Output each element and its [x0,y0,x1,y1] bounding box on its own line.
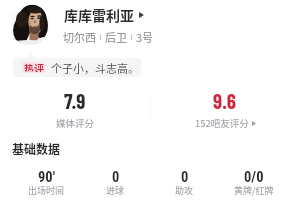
staticText: 进球 [106,184,125,197]
button[interactable]: 90' [12,169,81,199]
button[interactable]: 0/0 [219,169,288,199]
staticText: 90' [38,169,56,186]
staticText: 9.6 [213,88,237,113]
staticText: 个子小，斗志高。 [51,60,139,76]
staticText: 7.9 [64,88,86,113]
button[interactable]: 0 [81,169,150,199]
staticText: 0 [181,169,189,186]
staticText: 媒体评分 [56,116,95,130]
staticText: 0/0 [244,169,264,186]
button[interactable]: Player photo [9,4,50,45]
staticText: 切尔西 [63,29,96,45]
staticText: 出场时间 [28,184,65,197]
button[interactable]: 7.9 [12,88,138,130]
staticText: 3号 [136,29,154,45]
button[interactable]: 9.6 [162,88,288,130]
staticText: 基础数据 [12,140,61,157]
staticText: 0 [112,169,120,186]
staticText: 152吧友评分 [195,116,249,130]
button[interactable]: 库库雷利亚 [64,5,144,25]
staticText: 黄牌/红牌 [234,184,274,197]
staticText: 库库雷利亚 [64,5,134,25]
staticText: 助攻 [175,184,194,197]
button[interactable]: 0 [150,169,219,199]
staticText: 后卫 [105,29,127,45]
staticText: 热评 [24,62,44,72]
button[interactable]: 热评 [13,58,141,77]
